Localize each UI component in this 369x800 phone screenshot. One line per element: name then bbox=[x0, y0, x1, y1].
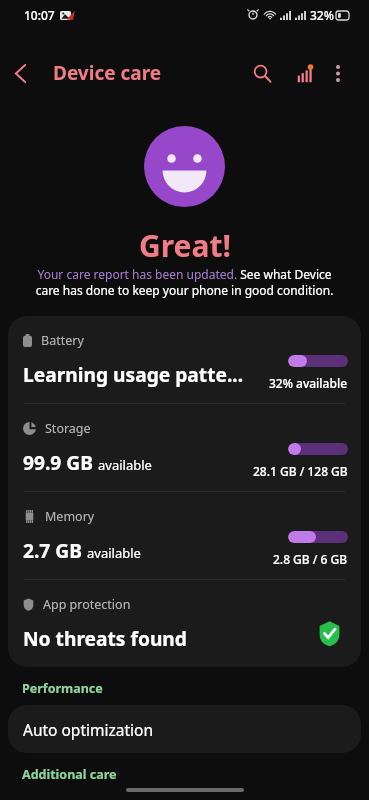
staticText: Auto optimization bbox=[23, 719, 154, 740]
staticText: Learning usage patte... bbox=[23, 361, 244, 387]
staticText: 10:07 bbox=[24, 7, 55, 23]
staticText: 2.8 GB / 6 GB bbox=[273, 551, 348, 567]
button[interactable]: Auto optimization bbox=[8, 705, 361, 753]
staticText: available bbox=[98, 456, 152, 474]
staticText: Performance bbox=[22, 680, 103, 697]
staticText: 2.7 GB bbox=[23, 537, 82, 563]
button[interactable]: Search bbox=[241, 52, 283, 94]
staticText: Device care bbox=[53, 60, 162, 86]
staticText: Battery bbox=[41, 332, 84, 349]
staticText: Additional care bbox=[22, 766, 117, 783]
button[interactable]: App protection bbox=[8, 580, 361, 667]
staticText: 99.9 GB bbox=[23, 449, 93, 475]
staticText: App protection bbox=[43, 596, 131, 613]
button[interactable]: Back bbox=[0, 53, 40, 93]
button[interactable]: More options bbox=[326, 52, 350, 94]
button[interactable]: Battery bbox=[8, 316, 361, 403]
staticText: Your care report has been updated. See w… bbox=[25, 266, 344, 299]
staticText: Storage bbox=[45, 420, 91, 437]
staticText: Great! bbox=[139, 225, 231, 266]
button[interactable]: Usage statistics bbox=[284, 52, 326, 94]
staticText: 28.1 GB / 128 GB bbox=[253, 463, 348, 479]
staticText: 32% bbox=[310, 7, 334, 23]
staticText: No threats found bbox=[23, 625, 187, 651]
staticText: available bbox=[87, 544, 141, 562]
staticText: Memory bbox=[45, 508, 95, 525]
staticText: 32% available bbox=[269, 375, 348, 391]
button[interactable]: Memory bbox=[8, 492, 361, 579]
button[interactable]: Storage bbox=[8, 404, 361, 491]
